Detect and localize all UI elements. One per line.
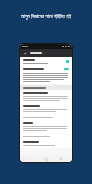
button[interactable]: Toggle xyxy=(20,57,72,66)
button[interactable]: Back xyxy=(23,51,28,56)
button[interactable] xyxy=(20,139,72,148)
button[interactable]: Toggle xyxy=(66,60,69,63)
staticText: আসুন বিজ্ঞানের সাথে পরিচিত হই xyxy=(0,13,92,20)
button[interactable] xyxy=(20,103,72,114)
button[interactable] xyxy=(20,114,72,120)
button[interactable] xyxy=(20,133,72,139)
button[interactable]: Recents xyxy=(58,156,64,162)
button[interactable] xyxy=(20,90,72,103)
button[interactable]: Home xyxy=(43,156,49,162)
button[interactable] xyxy=(20,120,72,133)
button[interactable] xyxy=(20,66,72,84)
